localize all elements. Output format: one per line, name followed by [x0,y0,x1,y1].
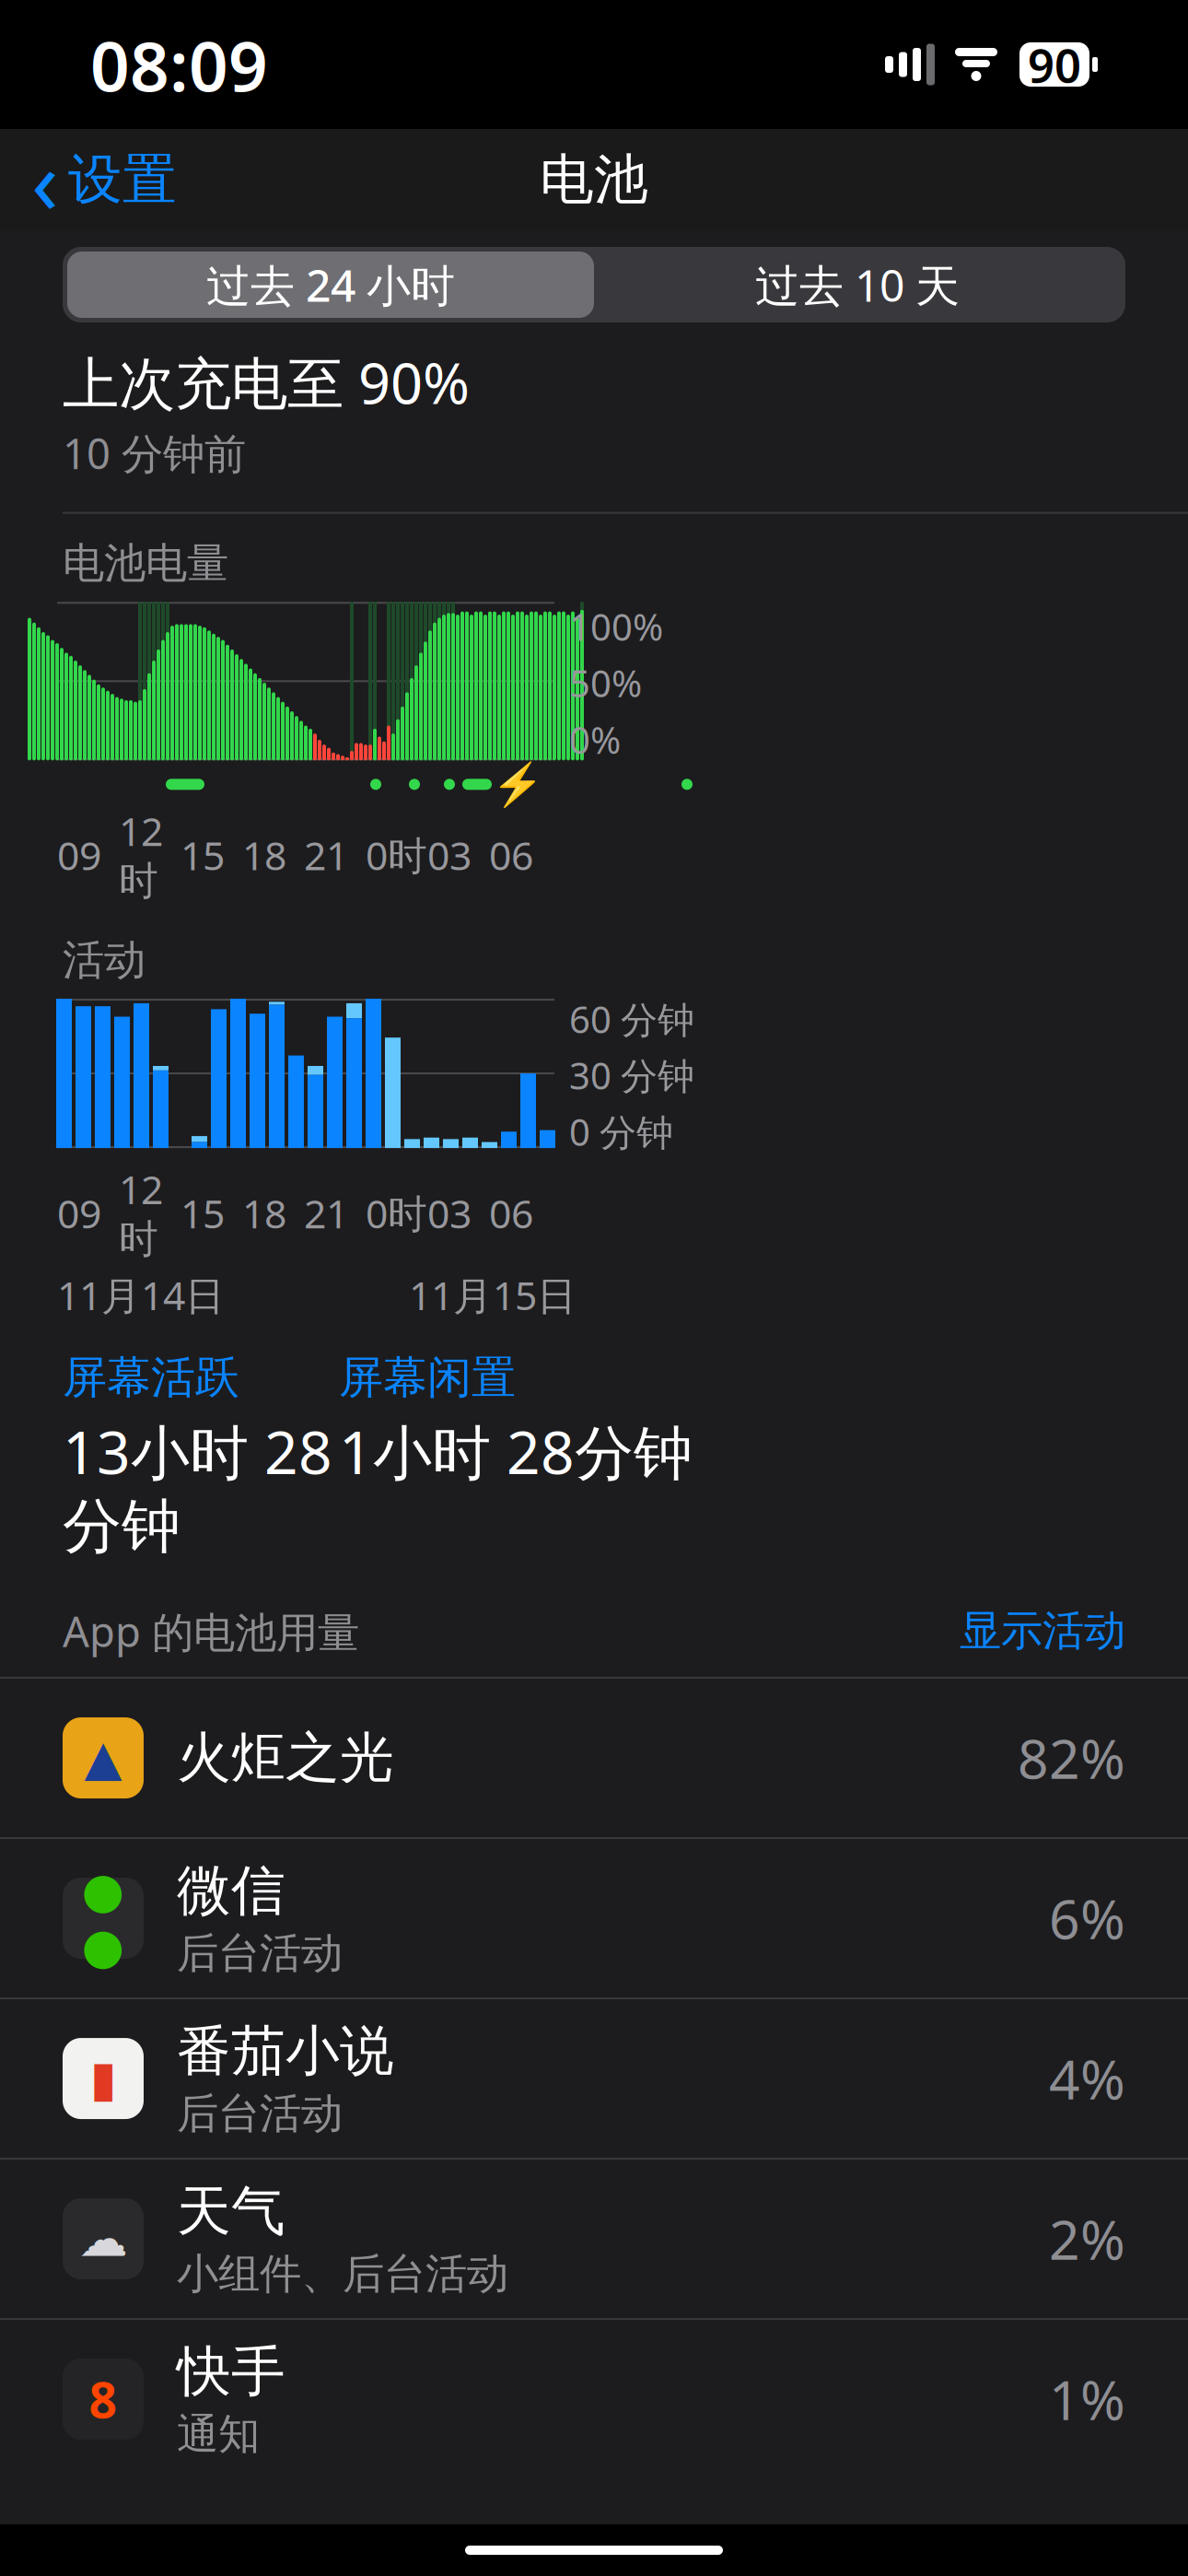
staticText: 12时 [119,805,163,905]
staticText: 活动 [63,935,146,986]
staticText: 1% [1049,2363,1125,2435]
staticText: 设置 [68,146,177,213]
staticText: 03 [427,1187,472,1239]
staticText: 通知 [177,2409,260,2460]
staticText: 屏幕闲置 [339,1350,516,1405]
staticText: 60 分钟 [569,994,694,1043]
staticText: 后台活动 [177,2088,343,2139]
staticText: 上次充电至 90% [63,345,470,420]
staticText: 50% [569,659,642,707]
staticText: 90 [1028,34,1081,96]
staticText: 12时 [119,1163,163,1263]
staticText: 0% [569,715,621,764]
staticText: 06 [489,1187,533,1239]
staticText: App 的电池用量 [63,1603,359,1659]
staticText: 15 [181,1187,225,1239]
button[interactable]: 过去 10 天 [594,252,1121,318]
staticText: 21 [304,829,348,881]
staticText: 电池电量 [63,538,228,589]
staticText: 11月14日 [57,1269,225,1321]
staticText: 过去 24 小时 [206,255,455,314]
button[interactable]: 8 [0,2318,1188,2478]
button[interactable]: 显示活动 [960,1600,1125,1662]
staticText: ⚡ [492,760,543,808]
staticText: 番茄小说 [177,2018,394,2084]
button[interactable]: ▮ [0,1997,1188,2158]
staticText: ☁ [79,2211,128,2267]
staticText: 微信 [177,1858,285,1924]
staticText: 18 [242,829,286,881]
staticText: 06 [489,829,533,881]
staticText: 10 分钟前 [63,425,246,481]
staticText: 4% [1049,2043,1125,2114]
staticText: 15 [181,829,225,881]
staticText: 100% [569,602,663,651]
staticText: 21 [304,1187,348,1239]
staticText: 09 [57,829,101,881]
staticText: 30 分钟 [569,1051,694,1100]
button[interactable]: ▲ [0,1677,1188,1837]
staticText: 0时 [366,1187,427,1239]
staticText: 过去 10 天 [755,255,960,314]
staticText: 6% [1049,1882,1125,1954]
staticText: 03 [427,829,472,881]
staticText: 电池 [540,146,648,213]
staticText: 08:09 [90,19,268,110]
staticText: ‹ [31,121,59,238]
staticText: 天气 [177,2178,285,2245]
button[interactable]: 过去 24 小时 [67,252,594,318]
staticText: 0时 [366,829,427,881]
staticText: 2% [1049,2203,1125,2275]
staticText: 火炬之光 [177,1725,394,1791]
staticText: 8 [89,2366,117,2432]
staticText: 后台活动 [177,1928,343,1979]
staticText: 快手 [177,2338,285,2405]
staticText: ▲ [84,1730,122,1786]
staticText: 1小时 28分钟 [339,1412,693,1491]
staticText: 82% [1018,1722,1125,1794]
staticText: 09 [57,1187,101,1239]
button[interactable]: ☁ [0,2158,1188,2318]
button[interactable]: ●● [0,1837,1188,1997]
staticText: 小组件、后台活动 [177,2248,508,2300]
staticText: 显示活动 [960,1605,1125,1657]
staticText: 18 [242,1187,286,1239]
staticText: 13小时 28分钟 [63,1412,332,1563]
staticText: 0 分钟 [569,1107,673,1156]
staticText: ●● [82,1862,125,1974]
staticText: ▮ [90,2051,116,2106]
button[interactable]: ‹ [0,114,177,246]
staticText: 屏幕活跃 [63,1350,239,1405]
staticText: 11月15日 [409,1269,577,1321]
